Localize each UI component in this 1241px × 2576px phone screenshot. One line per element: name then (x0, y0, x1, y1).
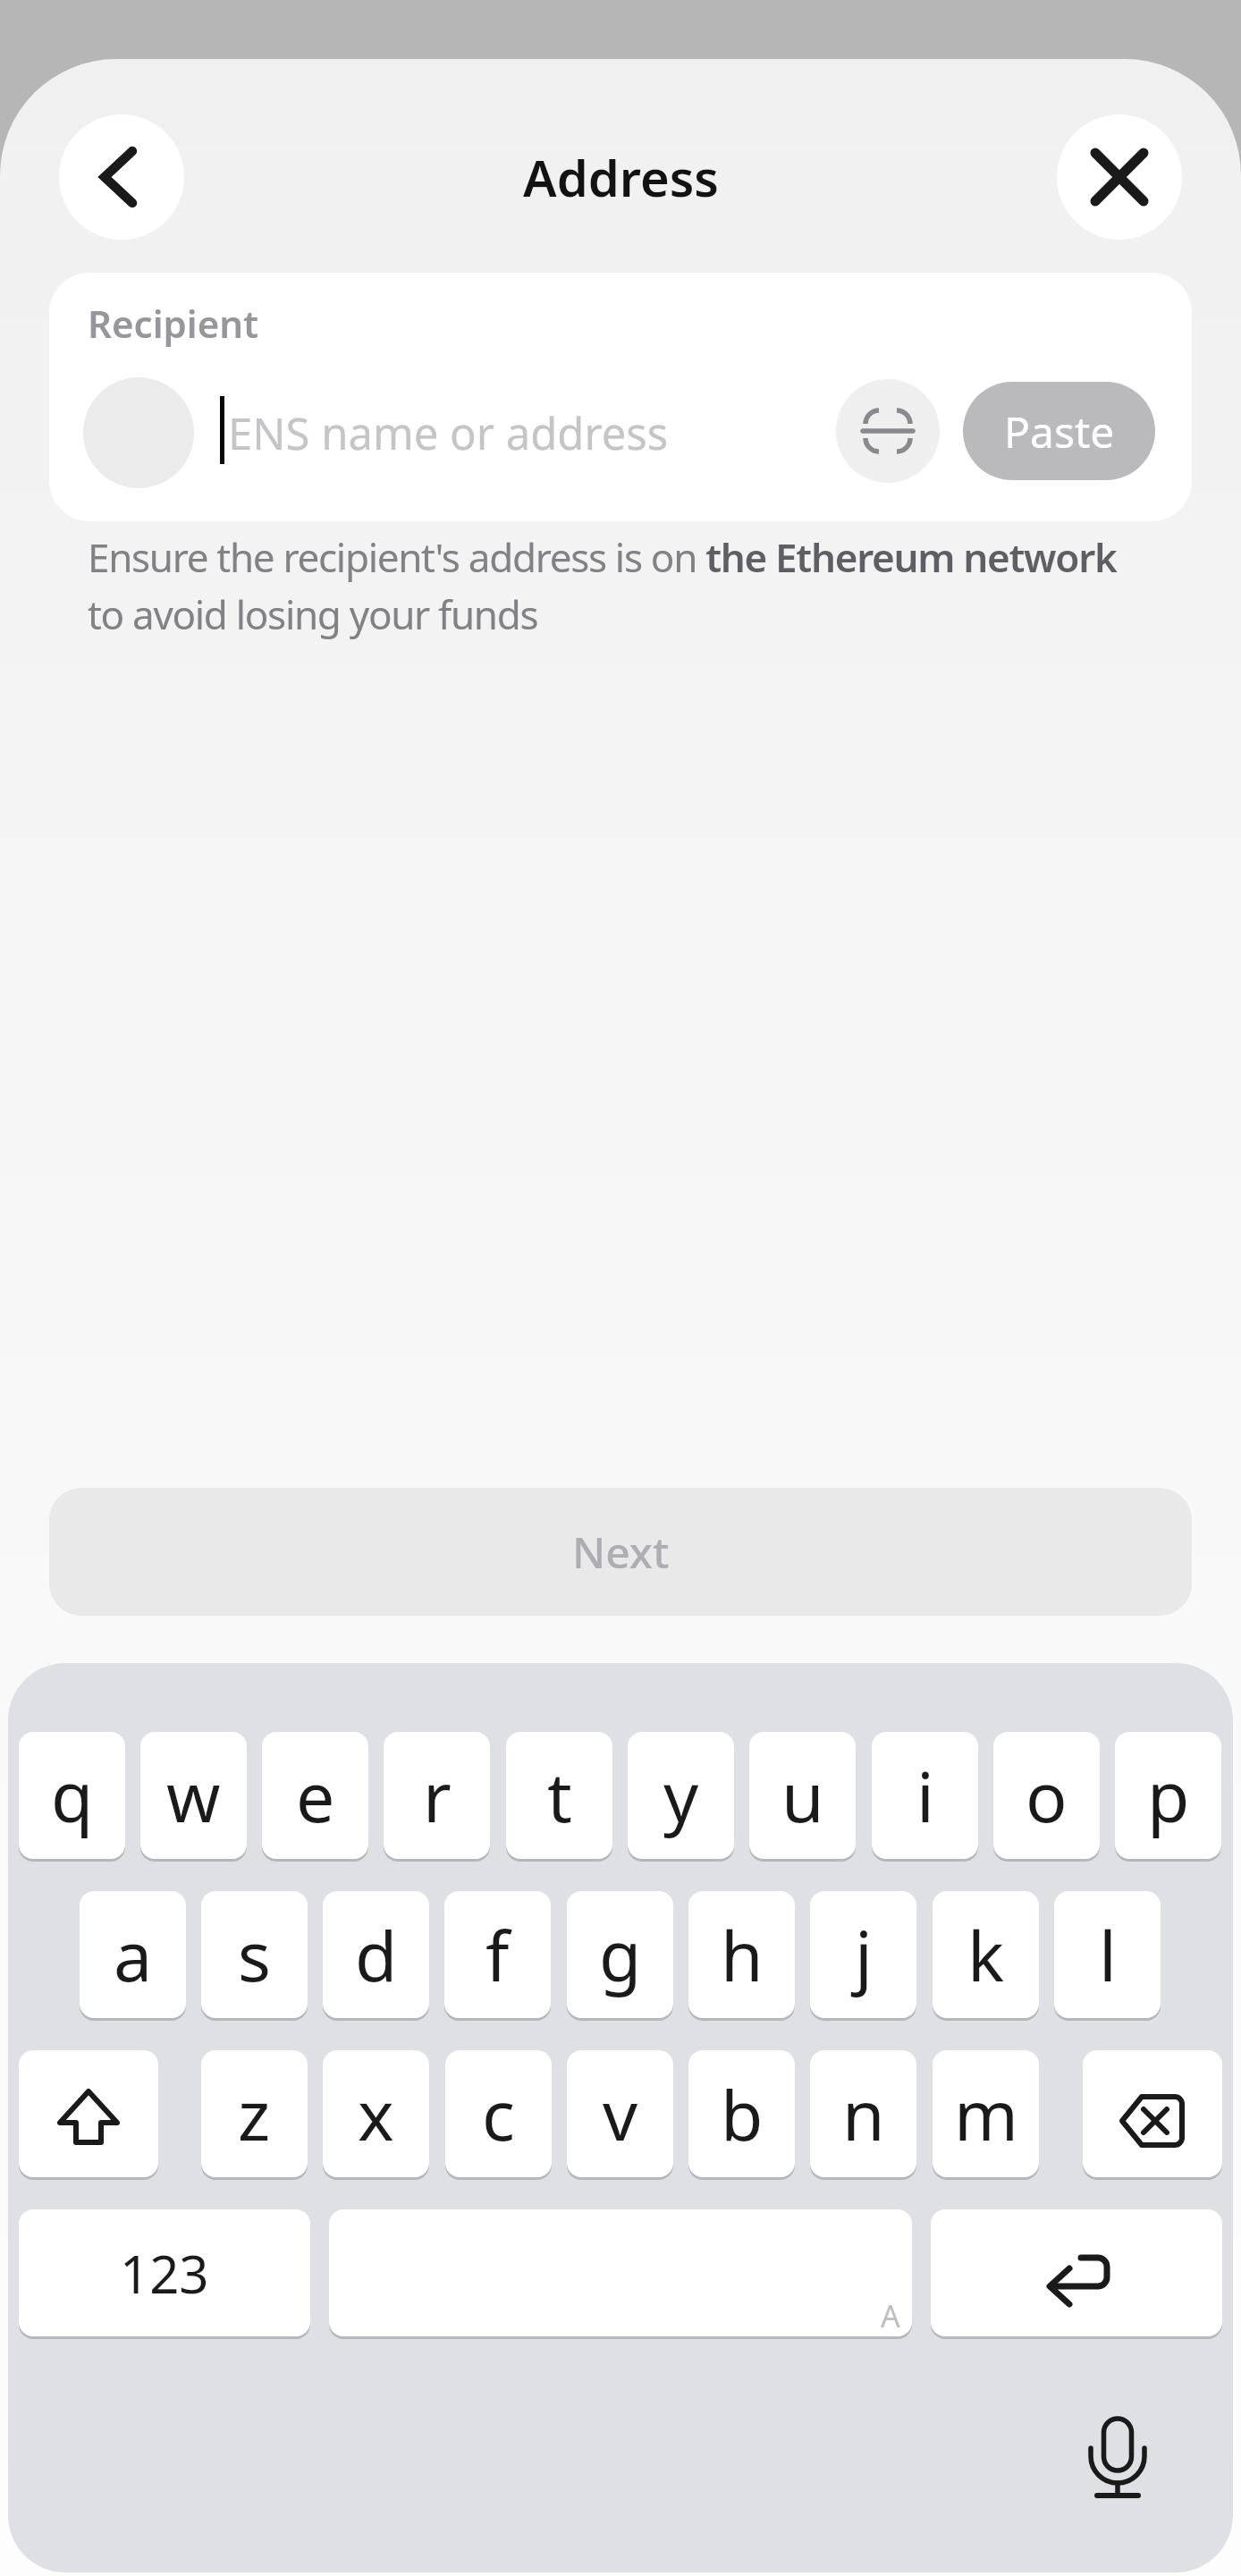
staticText: w (166, 1749, 221, 1843)
button[interactable]: c (445, 2050, 552, 2177)
staticText: ENS name or address (228, 403, 669, 463)
staticText: x (358, 2067, 394, 2161)
button[interactable]: t (506, 1732, 612, 1859)
button[interactable] (19, 2050, 158, 2177)
button[interactable]: x (323, 2050, 429, 2177)
button[interactable]: 123 (19, 2209, 310, 2336)
staticText: t (547, 1749, 572, 1843)
staticText: b (721, 2067, 764, 2161)
button[interactable]: p (1115, 1732, 1221, 1859)
staticText: r (423, 1749, 452, 1843)
staticText: h (721, 1908, 764, 2002)
staticText: f (485, 1908, 510, 2002)
staticText: l (1099, 1908, 1117, 2002)
staticText: e (296, 1749, 335, 1843)
staticText: g (599, 1908, 642, 2002)
staticText: v (603, 2067, 638, 2161)
button[interactable] (1083, 2050, 1222, 2177)
button[interactable]: q (19, 1732, 125, 1859)
staticText: Paste (1004, 402, 1115, 460)
staticText: Ensure the recipient's address is on the… (88, 530, 1117, 641)
staticText: j (855, 1908, 873, 2002)
staticText: a (114, 1908, 153, 2002)
button[interactable]: Next (49, 1488, 1192, 1616)
staticText: A (881, 2295, 900, 2336)
button[interactable] (1057, 114, 1182, 240)
staticText: i (916, 1749, 934, 1843)
staticText: 123 (120, 2238, 209, 2309)
staticText: Recipient (88, 298, 259, 349)
button[interactable]: n (810, 2050, 916, 2177)
button[interactable]: g (567, 1891, 673, 2018)
button[interactable]: f (444, 1891, 551, 2018)
button[interactable]: m (933, 2050, 1039, 2177)
staticText: q (51, 1749, 94, 1843)
button[interactable]: r (384, 1732, 490, 1859)
staticText: s (238, 1908, 271, 2002)
staticText: n (842, 2067, 885, 2161)
staticText: z (238, 2067, 271, 2161)
staticText: k (967, 1908, 1005, 2002)
staticText: y (663, 1749, 699, 1843)
staticText: Next (572, 1523, 670, 1581)
staticText: o (1026, 1749, 1068, 1843)
button[interactable]: b (688, 2050, 795, 2177)
button[interactable]: o (993, 1732, 1100, 1859)
button[interactable]: v (567, 2050, 673, 2177)
button[interactable]: u (749, 1732, 856, 1859)
staticText: u (781, 1749, 824, 1843)
button[interactable]: h (688, 1891, 795, 2018)
button[interactable]: s (201, 1891, 308, 2018)
button[interactable]: A (329, 2209, 912, 2336)
button[interactable]: i (872, 1732, 978, 1859)
button[interactable]: j (810, 1891, 916, 2018)
staticText: p (1147, 1749, 1190, 1843)
button[interactable]: k (933, 1891, 1039, 2018)
staticText: c (482, 2067, 515, 2161)
button[interactable]: l (1054, 1891, 1161, 2018)
button[interactable]: a (80, 1891, 186, 2018)
button[interactable] (836, 379, 940, 483)
button[interactable]: w (140, 1732, 247, 1859)
staticText: d (355, 1908, 398, 2002)
button[interactable]: d (323, 1891, 429, 2018)
staticText: m (954, 2067, 1018, 2161)
button[interactable] (931, 2209, 1222, 2336)
button[interactable]: z (201, 2050, 308, 2177)
button[interactable] (59, 114, 184, 240)
button[interactable]: Paste (963, 382, 1155, 480)
button[interactable]: y (628, 1732, 734, 1859)
button[interactable]: e (262, 1732, 368, 1859)
staticText: Address (523, 143, 719, 211)
